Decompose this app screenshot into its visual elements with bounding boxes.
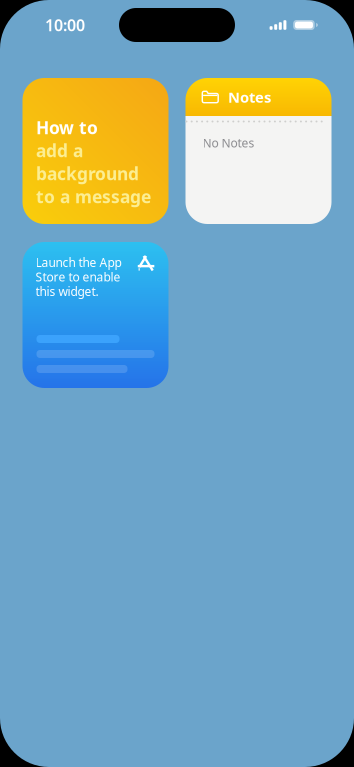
staticText: Notes: [228, 87, 271, 107]
staticText: Store to enable: [35, 269, 120, 285]
button[interactable]: Launch the App: [22, 242, 168, 388]
staticText: No Notes: [202, 135, 254, 151]
staticText: this widget.: [35, 283, 98, 299]
staticText: to a message: [36, 185, 151, 208]
staticText: How to: [36, 116, 98, 139]
staticText: 10:00: [45, 14, 85, 36]
staticText: add a: [36, 139, 83, 162]
staticText: background: [36, 162, 139, 185]
button[interactable]: Notes: [185, 78, 331, 224]
button[interactable]: How to: [22, 78, 168, 224]
staticText: Launch the App: [35, 254, 121, 270]
